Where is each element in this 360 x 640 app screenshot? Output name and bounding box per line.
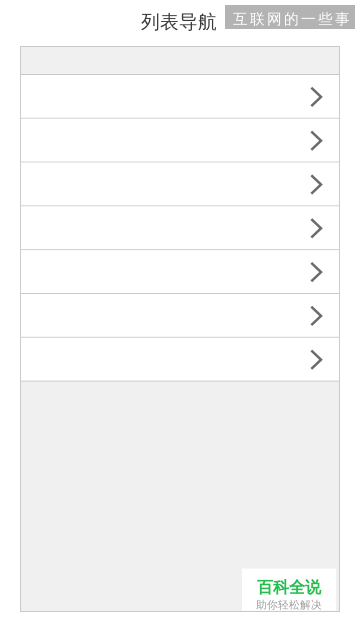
button[interactable]: 列表项 <box>21 250 339 294</box>
staticText: 助你轻松解决 <box>256 598 322 611</box>
staticText: 列表导航 <box>141 10 217 33</box>
button[interactable]: 列表项 <box>21 163 339 206</box>
button[interactable]: 列表项 <box>21 119 339 163</box>
button[interactable]: 列表项 <box>21 294 339 338</box>
staticText: 百科全说 <box>257 578 321 597</box>
button[interactable]: 互联网的一些事 <box>225 5 355 29</box>
button[interactable]: 列表项 <box>21 206 339 250</box>
button[interactable]: 列表项 <box>21 338 339 382</box>
staticText: 互联网的一些事 <box>233 10 350 28</box>
button[interactable]: 列表项 <box>21 75 339 119</box>
